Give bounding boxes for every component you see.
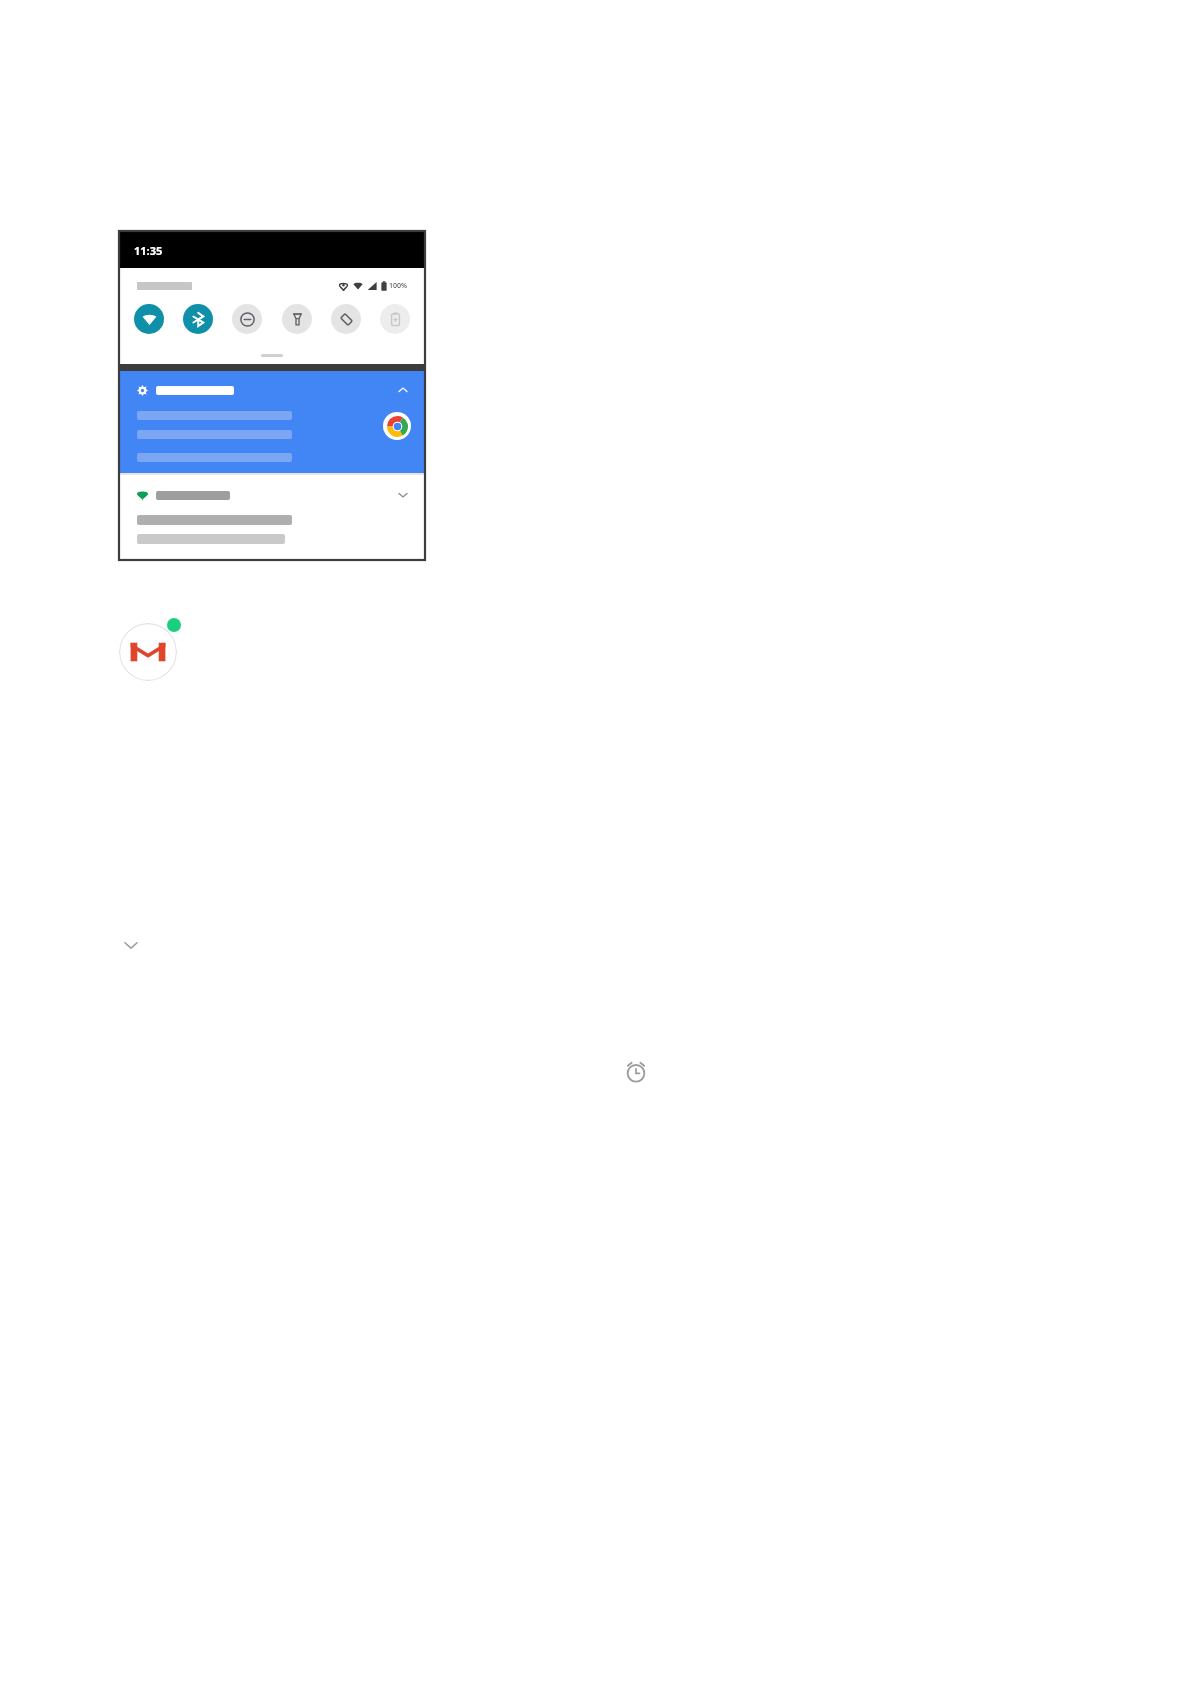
button[interactable]: Alarm: [622, 1058, 650, 1086]
button[interactable]: Collapse: [120, 371, 424, 473]
button[interactable]: Auto rotate: [331, 304, 361, 334]
button[interactable]: Battery saver: [380, 304, 410, 334]
button[interactable]: Collapse: [396, 383, 410, 397]
button[interactable]: Expand notification: [396, 488, 410, 502]
button[interactable]: Gmail: [119, 617, 183, 681]
button[interactable]: Flashlight: [282, 304, 312, 334]
staticText: 11:35: [134, 243, 163, 258]
button[interactable]: Chrome: [383, 412, 411, 440]
button[interactable]: Expand notification: [120, 475, 424, 560]
button[interactable]: Expand: [118, 932, 144, 958]
button[interactable]: Bluetooth: [183, 304, 213, 334]
button[interactable]: Do not disturb: [232, 304, 262, 334]
button[interactable]: Wi-Fi: [134, 304, 164, 334]
staticText: 100%: [389, 281, 407, 291]
